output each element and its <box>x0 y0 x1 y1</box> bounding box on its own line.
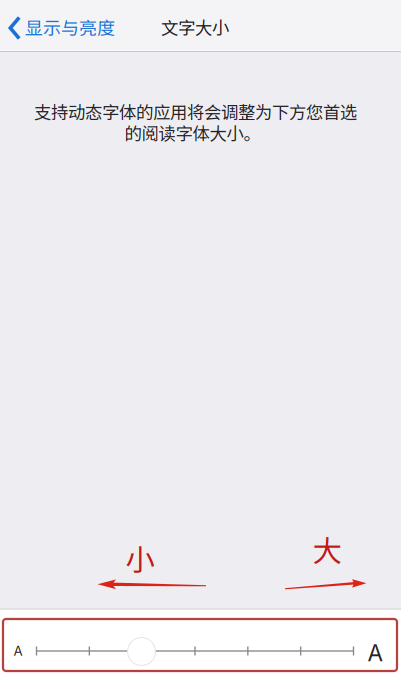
staticText: 小 <box>125 537 154 579</box>
staticText: 支持动态字体的应用将会调整为下方您首选 <box>34 99 357 124</box>
staticText: 的阅读字体大小。 <box>124 120 260 145</box>
staticText: 显示与亮度 <box>25 14 115 40</box>
button[interactable]: 显示与亮度 <box>0 4 123 48</box>
staticText: A <box>367 639 382 667</box>
staticText: A <box>13 643 22 659</box>
staticText: 文字大小 <box>161 14 229 40</box>
staticText: 大 <box>312 528 341 570</box>
